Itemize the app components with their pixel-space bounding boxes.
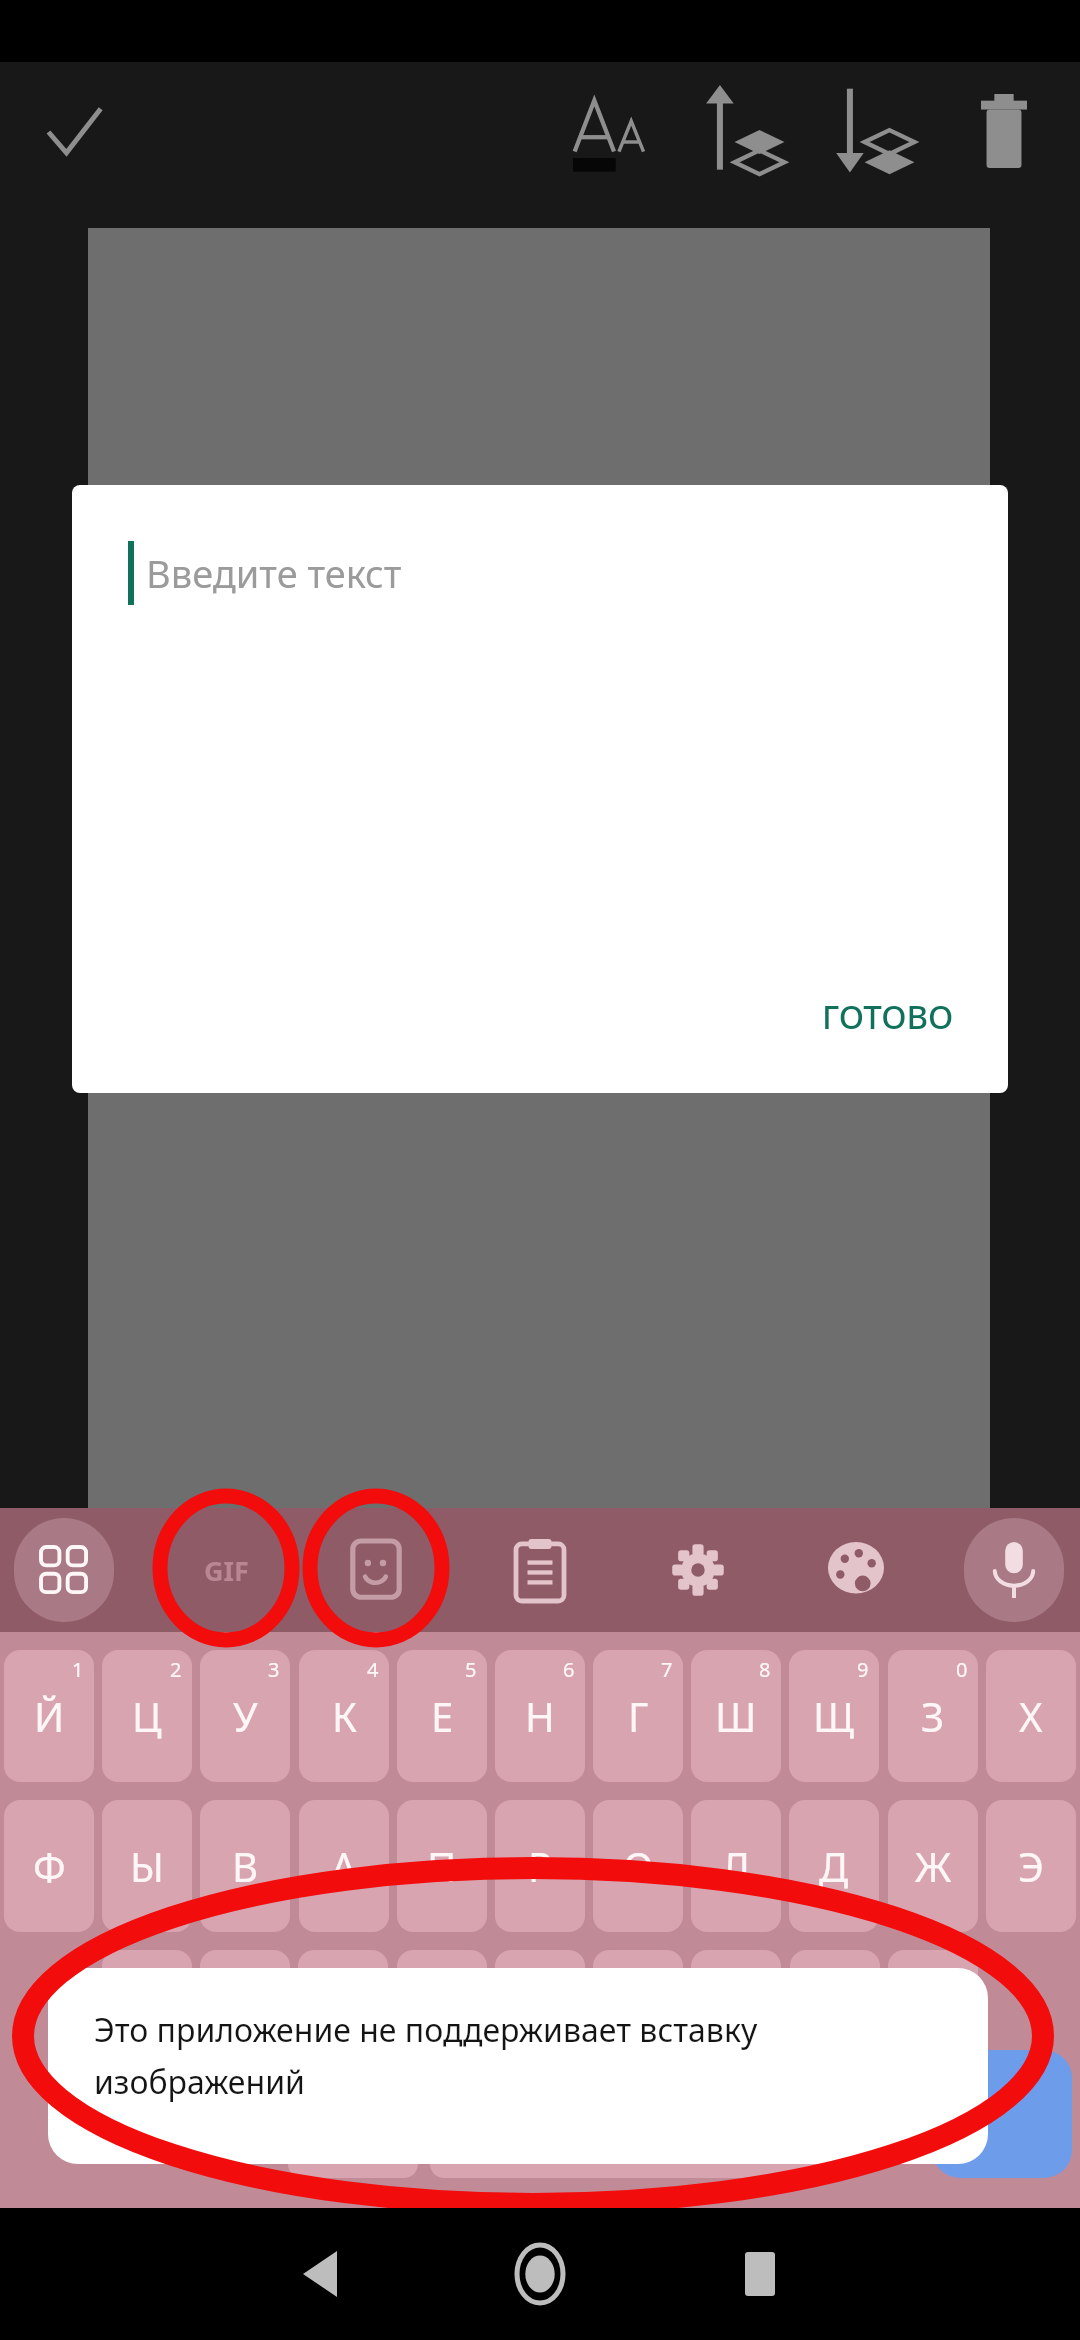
- staticText: Г: [628, 1689, 649, 1743]
- staticText: Ж: [915, 1839, 952, 1893]
- button[interactable]: Й: [4, 1650, 94, 1782]
- button[interactable]: Ч: [200, 1950, 290, 2082]
- button[interactable]: У: [200, 1650, 290, 1782]
- staticText: Я: [134, 1989, 160, 2043]
- button[interactable]: Н: [495, 1650, 585, 1782]
- button[interactable]: Щ: [789, 1650, 879, 1782]
- button[interactable]: Bring forward: [684, 72, 804, 190]
- button[interactable]: Clipboard: [490, 1518, 590, 1622]
- staticText: Н: [525, 1689, 555, 1743]
- staticText: GIF: [204, 1552, 249, 1589]
- button[interactable]: С: [298, 1950, 388, 2082]
- button[interactable]: Т: [593, 1950, 683, 2082]
- staticText: В: [232, 1839, 258, 1893]
- staticText: Э: [1018, 1839, 1044, 1893]
- button[interactable]: Enter: [932, 2050, 1072, 2178]
- button[interactable]: Settings: [648, 1518, 748, 1622]
- button[interactable]: Home: [492, 2226, 588, 2322]
- staticText: 6: [563, 1656, 575, 1683]
- button[interactable]: Р: [495, 1800, 585, 1932]
- button[interactable]: Theme: [806, 1518, 906, 1622]
- button[interactable]: Э: [986, 1800, 1076, 1932]
- staticText: М: [424, 1989, 461, 2043]
- staticText: 5: [465, 1656, 477, 1683]
- staticText: Е: [431, 1689, 454, 1743]
- button[interactable]: Это приложение не поддерживает вставку и…: [48, 1968, 988, 2164]
- button[interactable]: Space: [430, 2124, 850, 2178]
- staticText: С: [330, 1989, 356, 2043]
- button[interactable]: Г: [593, 1650, 683, 1782]
- staticText: 3: [268, 1656, 280, 1683]
- button[interactable]: Ф: [4, 1800, 94, 1932]
- button[interactable]: Л: [691, 1800, 781, 1932]
- button[interactable]: Ш: [691, 1650, 781, 1782]
- button[interactable]: О: [593, 1800, 683, 1932]
- staticText: П: [427, 1839, 457, 1893]
- button[interactable]: Е: [397, 1650, 487, 1782]
- staticText: Ц: [132, 1689, 162, 1743]
- button[interactable]: Ь: [691, 1950, 781, 2082]
- staticText: Й: [34, 1689, 65, 1743]
- staticText: 8: [759, 1656, 771, 1683]
- button[interactable]: Х: [986, 1650, 1076, 1782]
- staticText: Ф: [33, 1839, 66, 1893]
- staticText: Введите текст: [146, 547, 402, 599]
- staticText: Р: [528, 1839, 553, 1893]
- staticText: У: [233, 1689, 258, 1743]
- button[interactable]: Send backward: [814, 72, 934, 190]
- button[interactable]: П: [397, 1800, 487, 1932]
- button[interactable]: З: [888, 1650, 978, 1782]
- button[interactable]: И: [495, 1950, 585, 2082]
- staticText: К: [332, 1689, 357, 1743]
- button[interactable]: Б: [790, 1950, 880, 2082]
- staticText: 7: [661, 1656, 673, 1683]
- button[interactable]: В: [200, 1800, 290, 1932]
- staticText: Ы: [130, 1839, 164, 1893]
- button[interactable]: Font size: [556, 78, 672, 190]
- staticText: И: [525, 1989, 556, 2043]
- button[interactable]: Ю: [888, 1950, 978, 2082]
- staticText: Ш: [715, 1689, 757, 1743]
- button[interactable]: Menu: [14, 1518, 114, 1622]
- staticText: Щ: [813, 1689, 855, 1743]
- staticText: Это приложение не поддерживает вставку и…: [94, 2008, 924, 2103]
- staticText: Л: [722, 1839, 750, 1893]
- staticText: А: [331, 1839, 357, 1893]
- button[interactable]: Ы: [102, 1800, 192, 1932]
- button[interactable]: Recents: [712, 2226, 808, 2322]
- button[interactable]: Voice input: [964, 1518, 1064, 1622]
- staticText: 9: [857, 1656, 869, 1683]
- button[interactable]: Я: [102, 1950, 192, 2082]
- button[interactable]: К: [299, 1650, 389, 1782]
- staticText: 1: [72, 1656, 84, 1683]
- staticText: Ч: [232, 1989, 259, 2043]
- staticText: Т: [627, 1989, 650, 2043]
- button[interactable]: Д: [789, 1800, 879, 1932]
- staticText: Х: [1019, 1689, 1043, 1743]
- button[interactable]: GIF: [176, 1518, 276, 1622]
- staticText: 0: [956, 1656, 968, 1683]
- staticText: Ь: [724, 1989, 749, 2043]
- staticText: Д: [819, 1839, 849, 1893]
- staticText: 2: [170, 1656, 182, 1683]
- button[interactable]: А: [299, 1800, 389, 1932]
- button[interactable]: Stickers: [326, 1518, 426, 1622]
- button[interactable]: Back: [272, 2226, 368, 2322]
- button[interactable]: ГОТОВО: [808, 984, 968, 1049]
- button[interactable]: М: [397, 1950, 487, 2082]
- button[interactable]: Ц: [102, 1650, 192, 1782]
- staticText: ГОТОВО: [822, 994, 954, 1039]
- staticText: З: [921, 1689, 945, 1743]
- button[interactable]: Delete: [948, 74, 1060, 188]
- button[interactable]: Ж: [888, 1800, 978, 1932]
- staticText: 4: [367, 1656, 379, 1683]
- staticText: О: [623, 1839, 654, 1893]
- button[interactable]: Accept: [20, 80, 128, 184]
